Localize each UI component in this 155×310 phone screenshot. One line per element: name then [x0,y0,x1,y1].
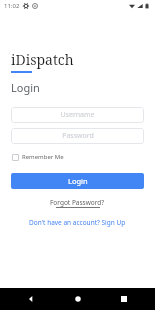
button[interactable]: Remember Me [11,152,65,162]
staticText: Login [11,80,40,95]
button[interactable]: Login [11,173,144,189]
button[interactable]: Home [63,288,93,310]
button[interactable]: Recent apps [109,288,139,310]
staticText: 11:02 [4,2,20,10]
staticText: Username [60,110,95,120]
button[interactable]: Password [11,128,144,144]
staticText: Password [62,131,94,141]
staticText: Login [68,176,88,186]
staticText: Don't have an account? Sign Up [29,218,126,227]
button[interactable]: Forgot Password? [47,197,108,209]
staticText: Remember Me [22,153,64,161]
button[interactable]: Username [11,107,144,123]
staticText: iDispatch [11,50,74,69]
button[interactable]: Don't have an account? Sign Up [26,217,129,228]
button[interactable]: Back [16,288,46,310]
staticText: Forgot Password? [50,198,105,207]
